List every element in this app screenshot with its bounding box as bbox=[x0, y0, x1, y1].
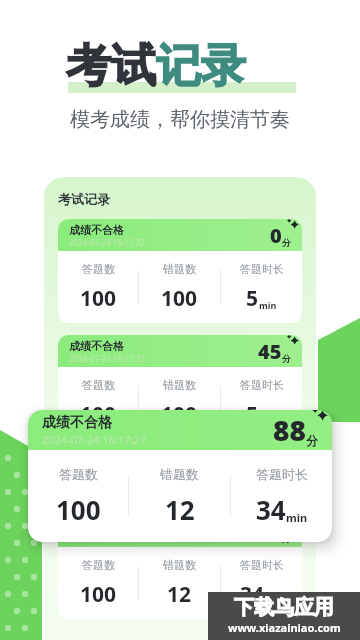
staticText: 错题数 bbox=[163, 378, 196, 392]
staticText: 记录 bbox=[156, 38, 246, 95]
button[interactable]: 成绩不合格 bbox=[28, 410, 332, 542]
staticText: min bbox=[265, 595, 283, 607]
staticText: 错题数 bbox=[160, 466, 199, 482]
staticText: 45 bbox=[258, 338, 282, 365]
button[interactable]: 成绩合格 bbox=[58, 515, 302, 619]
staticText: 下载鸟应用 bbox=[234, 595, 334, 620]
staticText: 成绩合格 bbox=[69, 519, 113, 533]
staticText: 2024-07-24 16:17:27 bbox=[69, 533, 145, 544]
staticText: 分 bbox=[282, 353, 291, 364]
staticText: 100 bbox=[246, 518, 282, 545]
staticText: 34 bbox=[240, 580, 265, 609]
staticText: 0 bbox=[270, 222, 282, 249]
staticText: 错题数 bbox=[163, 262, 196, 276]
staticText: 答题数 bbox=[82, 558, 115, 572]
staticText: 答题数 bbox=[82, 378, 115, 392]
staticText: www.xiazainiao.com bbox=[228, 620, 341, 635]
staticText: 100 bbox=[56, 492, 101, 527]
button[interactable]: 成绩不合格 bbox=[58, 219, 302, 323]
staticText: 成绩不合格 bbox=[42, 414, 112, 432]
staticText: 答题数 bbox=[82, 262, 115, 276]
staticText: 分 bbox=[306, 433, 318, 448]
staticText: 模考成绩，帮你摸清节奏 bbox=[0, 107, 360, 132]
staticText: 5 bbox=[246, 400, 259, 429]
staticText: 100 bbox=[161, 284, 198, 313]
staticText: 答题时长 bbox=[256, 466, 308, 482]
staticText: 考试记录 bbox=[58, 191, 110, 207]
staticText: 答题时长 bbox=[240, 558, 284, 572]
staticText: 88 bbox=[273, 411, 306, 449]
staticText: min bbox=[259, 299, 277, 311]
staticText: 考试 bbox=[66, 38, 156, 95]
staticText: 100 bbox=[161, 400, 198, 429]
staticText: 100 bbox=[80, 284, 117, 313]
staticText: 12 bbox=[167, 580, 192, 609]
staticText: 答题时长 bbox=[240, 262, 284, 276]
staticText: 2024-07-24 16:17:27 bbox=[69, 353, 145, 364]
staticText: 5 bbox=[246, 284, 259, 313]
staticText: 34 bbox=[256, 492, 286, 527]
staticText: 成绩不合格 bbox=[69, 223, 124, 237]
staticText: 12 bbox=[165, 492, 195, 527]
staticText: 100 bbox=[80, 400, 117, 429]
staticText: 错题数 bbox=[163, 558, 196, 572]
staticText: 分 bbox=[282, 237, 291, 248]
staticText: 成绩不合格 bbox=[69, 339, 124, 353]
staticText: 100 bbox=[80, 580, 117, 609]
staticText: min bbox=[286, 510, 308, 525]
staticText: 2024-07-24 16:17:27 bbox=[42, 432, 146, 447]
staticText: 2024-07-24 16:17:27 bbox=[69, 237, 145, 248]
staticText: 分 bbox=[282, 533, 291, 544]
staticText: min bbox=[259, 415, 277, 427]
staticText: 答题数 bbox=[59, 466, 98, 482]
staticText: 答题时长 bbox=[240, 378, 284, 392]
button[interactable]: 成绩不合格 bbox=[58, 335, 302, 439]
